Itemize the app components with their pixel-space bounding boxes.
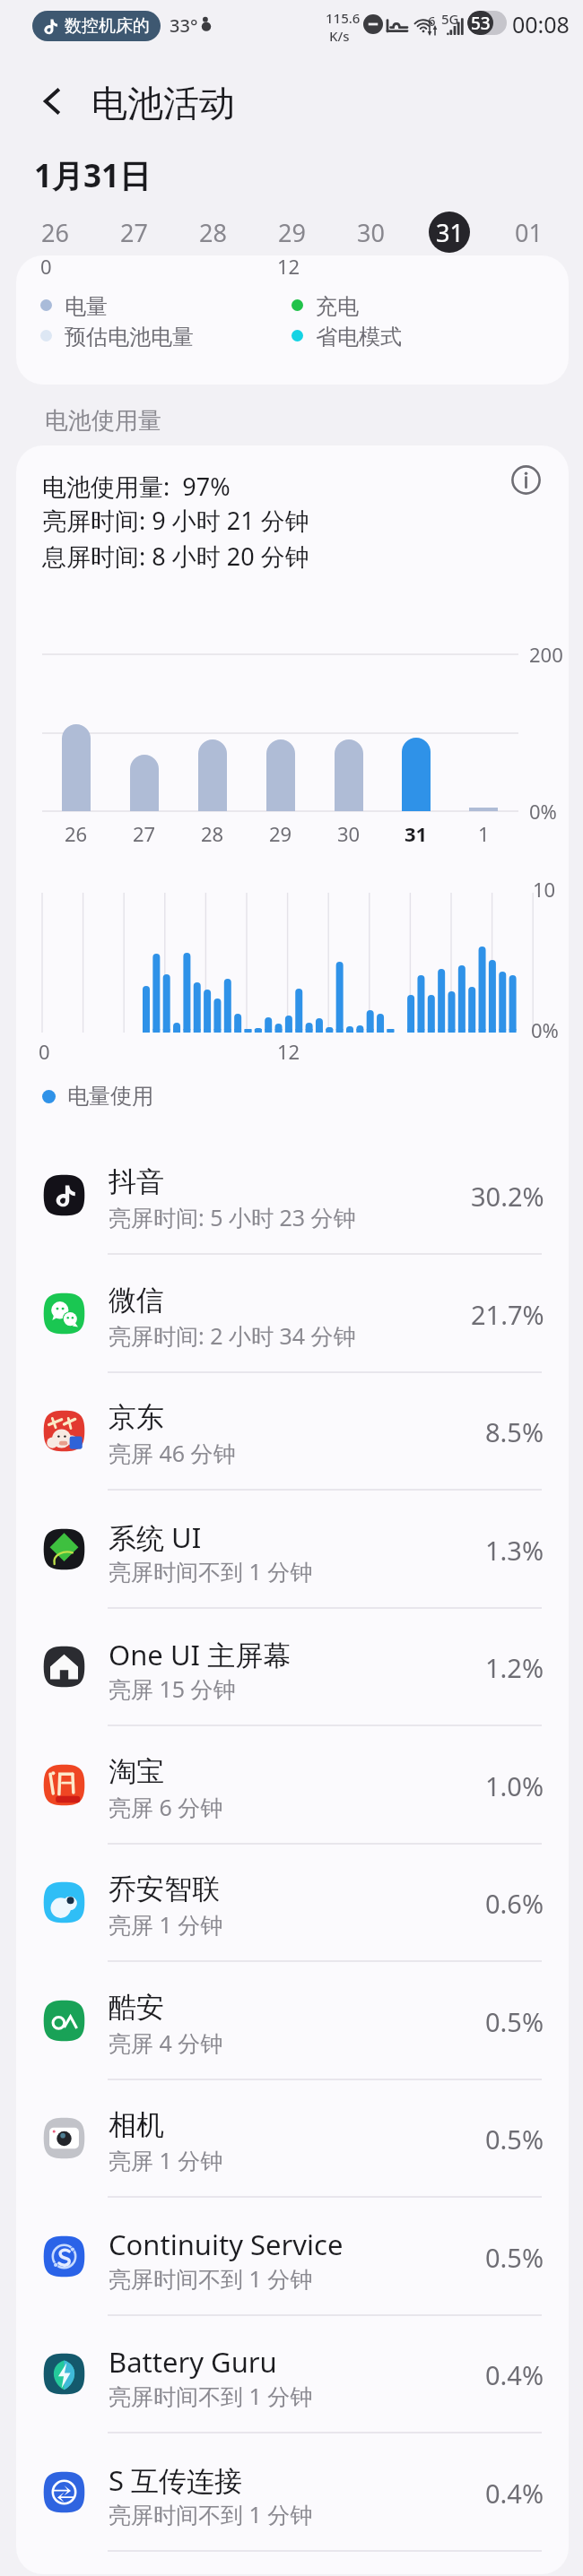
- staticText: 29: [278, 216, 306, 249]
- staticText: 1.0%: [485, 1768, 544, 1803]
- button[interactable]: 01: [489, 207, 568, 257]
- staticText: 6: [428, 12, 436, 30]
- button[interactable]: Battery Guru: [16, 2315, 569, 2433]
- staticText: 0.5%: [485, 2004, 544, 2039]
- staticText: 乔安智联: [109, 1871, 220, 1906]
- staticText: 27: [133, 820, 156, 847]
- staticText: 相机: [109, 2107, 164, 2142]
- button[interactable]: 30: [331, 207, 410, 257]
- staticText: 亮屏 1 分钟: [109, 2145, 223, 2175]
- staticText: 31: [436, 216, 464, 249]
- staticText: 亮屏时间: 2 小时 34 分钟: [109, 1320, 356, 1351]
- staticText: 亮屏时间不到 1 分钟: [109, 2499, 313, 2529]
- staticText: 0.5%: [485, 2122, 544, 2157]
- staticText: 30: [357, 216, 385, 249]
- staticText: 0%: [529, 798, 557, 825]
- button[interactable]: S 互传连接: [16, 2433, 569, 2552]
- staticText: 0.5%: [485, 2240, 544, 2275]
- button[interactable]: 淘宝: [16, 1726, 569, 1845]
- staticText: 53: [471, 12, 491, 35]
- staticText: 0%: [531, 1016, 559, 1043]
- staticText: 亮屏 46 分钟: [109, 1438, 236, 1468]
- staticText: 0.6%: [485, 1886, 544, 1921]
- staticText: 31: [405, 820, 428, 847]
- staticText: 亮屏时间不到 1 分钟: [109, 2381, 313, 2411]
- button[interactable]: 乔安智联: [16, 1844, 569, 1962]
- staticText: 5G: [441, 10, 459, 28]
- button[interactable]: Info: [503, 457, 548, 502]
- staticText: 充电: [316, 293, 359, 316]
- staticText: 抖音: [109, 1164, 164, 1199]
- staticText: Battery Guru: [109, 2343, 277, 2381]
- staticText: 亮屏 6 分钟: [109, 1792, 223, 1822]
- staticText: 亮屏 4 分钟: [109, 2027, 223, 2058]
- staticText: 1.2%: [485, 1650, 544, 1685]
- staticText: 亮屏时间不到 1 分钟: [109, 1556, 313, 1586]
- staticText: 28: [199, 216, 227, 249]
- button[interactable]: 26: [15, 207, 94, 257]
- button[interactable]: 抖音: [16, 1137, 569, 1255]
- button[interactable]: 京东: [16, 1372, 569, 1491]
- staticText: 26: [41, 216, 69, 249]
- staticText: 200: [529, 641, 563, 668]
- staticText: 33°: [170, 13, 198, 38]
- button[interactable]: 系统 UI: [16, 1491, 569, 1609]
- staticText: 电池使用量: [45, 406, 161, 436]
- staticText: 0.4%: [485, 2476, 544, 2511]
- button[interactable]: 相机: [16, 2079, 569, 2198]
- staticText: 亮屏时间不到 1 分钟: [109, 2263, 313, 2294]
- staticText: 亮屏 1 分钟: [109, 1909, 223, 1940]
- staticText: 30: [337, 820, 361, 847]
- staticText: 预估电池电量: [65, 324, 194, 347]
- staticText: 1月31日: [34, 154, 152, 197]
- staticText: 12: [277, 1038, 300, 1065]
- button[interactable]: 微信: [16, 1255, 569, 1373]
- button[interactable]: 29: [252, 207, 331, 257]
- staticText: 0.4%: [485, 2357, 544, 2392]
- staticText: 电池活动: [91, 81, 235, 125]
- staticText: 数控机床的: [65, 15, 150, 37]
- staticText: 淘宝: [109, 1754, 164, 1789]
- staticText: 息屏时间: 8 小时 20 分钟: [42, 540, 309, 573]
- staticText: 0: [40, 255, 52, 280]
- button[interactable]: 酷安: [16, 1962, 569, 2080]
- staticText: 电池使用量: 97%: [42, 470, 231, 503]
- button[interactable]: Continuity Service: [16, 2198, 569, 2316]
- staticText: 电量: [65, 293, 108, 316]
- staticText: 1: [478, 820, 490, 847]
- staticText: 1.3%: [485, 1533, 544, 1568]
- staticText: 28: [201, 820, 224, 847]
- staticText: S 互传连接: [109, 2461, 243, 2499]
- button[interactable]: 27: [94, 207, 173, 257]
- staticText: 29: [269, 820, 292, 847]
- staticText: K/s: [329, 27, 350, 45]
- button[interactable]: 28: [173, 207, 252, 257]
- staticText: 亮屏时间: 9 小时 21 分钟: [42, 504, 309, 537]
- staticText: 00:08: [512, 9, 570, 39]
- staticText: 亮屏 15 分钟: [109, 1673, 236, 1704]
- staticText: 26: [65, 820, 88, 847]
- staticText: 京东: [109, 1400, 164, 1435]
- staticText: One UI 主屏幕: [109, 1636, 291, 1673]
- staticText: 8.5%: [485, 1414, 544, 1449]
- staticText: 01: [515, 216, 543, 249]
- staticText: 30.2%: [471, 1179, 544, 1214]
- staticText: 微信: [109, 1283, 164, 1318]
- staticText: 12: [277, 255, 300, 280]
- button[interactable]: Back: [28, 76, 78, 126]
- button[interactable]: One UI 主屏幕: [16, 1608, 569, 1726]
- staticText: 0: [39, 1038, 50, 1065]
- staticText: 10: [533, 876, 556, 903]
- staticText: 省电模式: [316, 324, 402, 347]
- button[interactable]: 31: [410, 207, 489, 257]
- staticText: 酷安: [109, 1990, 164, 2025]
- staticText: 电量使用: [67, 1083, 153, 1110]
- staticText: 亮屏时间: 5 小时 23 分钟: [109, 1202, 356, 1232]
- staticText: 27: [120, 216, 148, 249]
- staticText: 21.7%: [471, 1297, 544, 1332]
- staticText: 系统 UI: [109, 1518, 202, 1556]
- staticText: Continuity Service: [109, 2226, 344, 2263]
- staticText: 115.6: [326, 9, 361, 27]
